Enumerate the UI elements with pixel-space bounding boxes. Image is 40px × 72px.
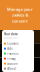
staticText: Manage your: [7, 6, 33, 12]
button[interactable]: Privacy: [4, 56, 32, 61]
button[interactable]: About: [4, 66, 32, 71]
staticText: Cookies: [7, 42, 18, 45]
staticText: >: [31, 68, 32, 69]
staticText: consent: [12, 18, 28, 24]
staticText: About: [7, 67, 16, 70]
staticText: >: [31, 48, 32, 49]
staticText: Pick what you share: [4, 37, 18, 39]
staticText: Partners: [7, 52, 18, 55]
staticText: Account: [7, 62, 18, 65]
button[interactable]: Cookies: [4, 41, 32, 46]
staticText: Ads: [7, 47, 12, 50]
staticText: Your data: [4, 32, 18, 36]
staticText: cookies &: [11, 12, 28, 18]
button[interactable]: Account: [4, 61, 32, 66]
button[interactable]: Partners: [4, 51, 32, 56]
staticText: >: [31, 58, 32, 59]
button[interactable]: Ads: [4, 46, 32, 51]
staticText: Privacy: [7, 57, 15, 60]
